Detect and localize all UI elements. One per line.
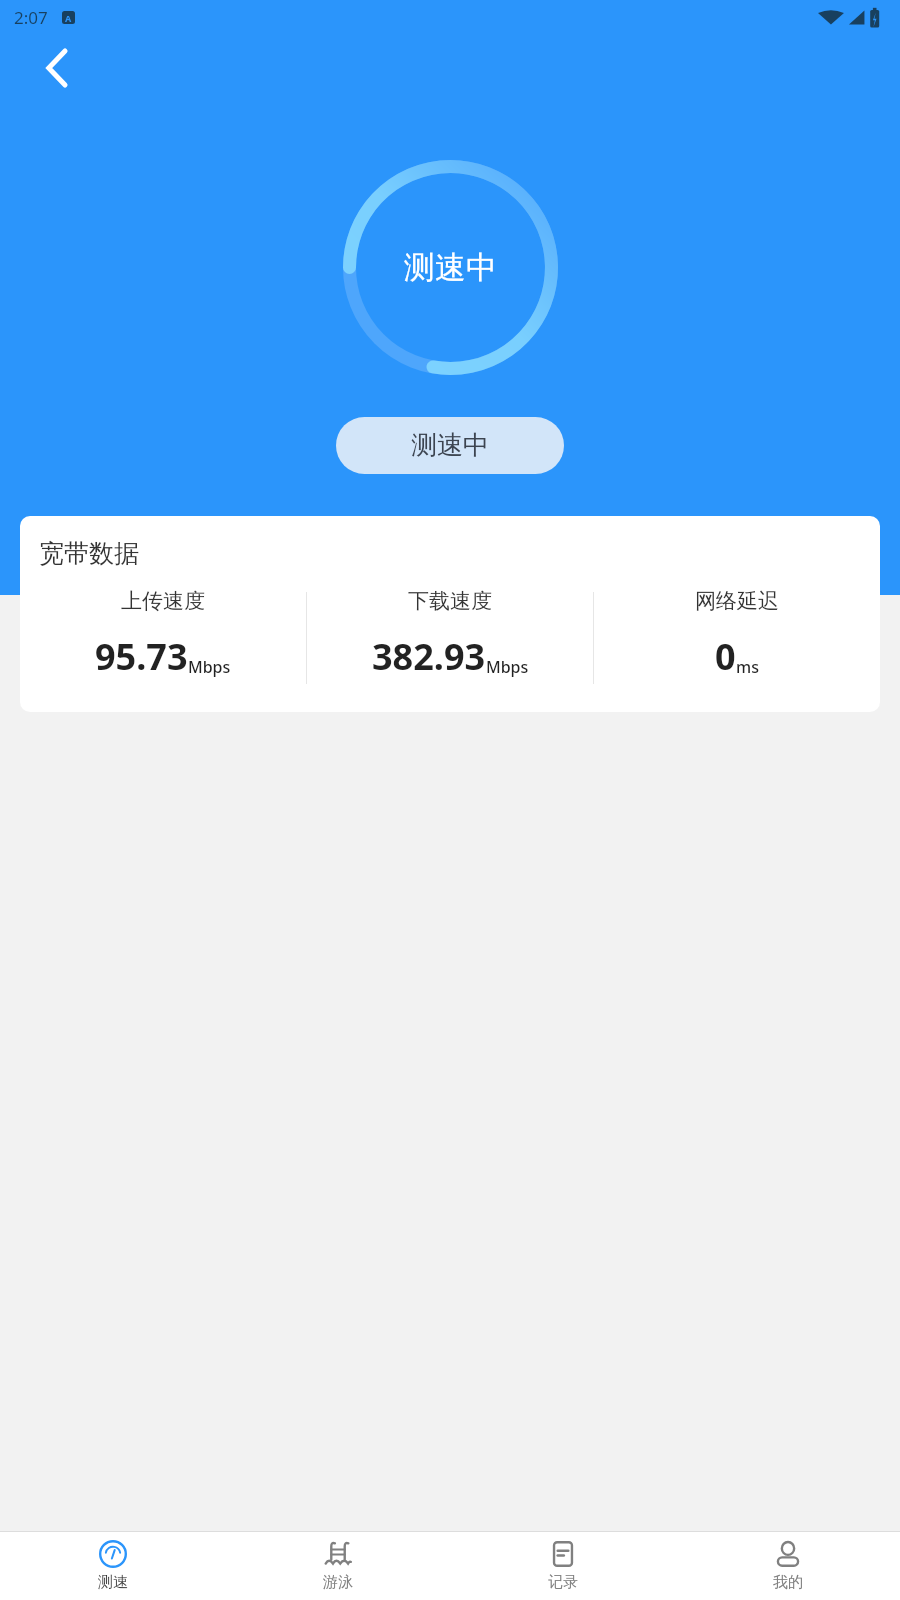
staticText: 游泳 — [323, 1573, 353, 1592]
staticText: 网络延迟 — [695, 588, 779, 614]
button[interactable]: 测速 — [0, 1532, 225, 1600]
staticText: 测速 — [98, 1573, 128, 1592]
staticText: 记录 — [548, 1573, 578, 1592]
button[interactable]: 记录 — [450, 1532, 675, 1600]
staticText: 2:07 — [14, 6, 48, 29]
staticText: Mbps — [188, 656, 231, 678]
staticText: A — [65, 12, 72, 24]
button[interactable]: 测速中 — [336, 417, 564, 474]
staticText: 我的 — [773, 1573, 803, 1592]
staticText: 382.93 — [372, 632, 486, 681]
button[interactable]: 我的 — [675, 1532, 900, 1600]
staticText: Mbps — [486, 656, 529, 678]
staticText: 下载速度 — [408, 588, 492, 614]
staticText: 95.73 — [95, 632, 188, 681]
staticText: ms — [736, 656, 759, 678]
staticText: 测速中 — [404, 248, 497, 287]
staticText: 测速中 — [411, 429, 489, 462]
staticText: 宽带数据 — [39, 538, 139, 569]
button[interactable]: Back — [36, 46, 80, 90]
staticText: 0 — [715, 632, 736, 681]
button[interactable]: 游泳 — [225, 1532, 450, 1600]
staticText: 上传速度 — [121, 588, 205, 614]
